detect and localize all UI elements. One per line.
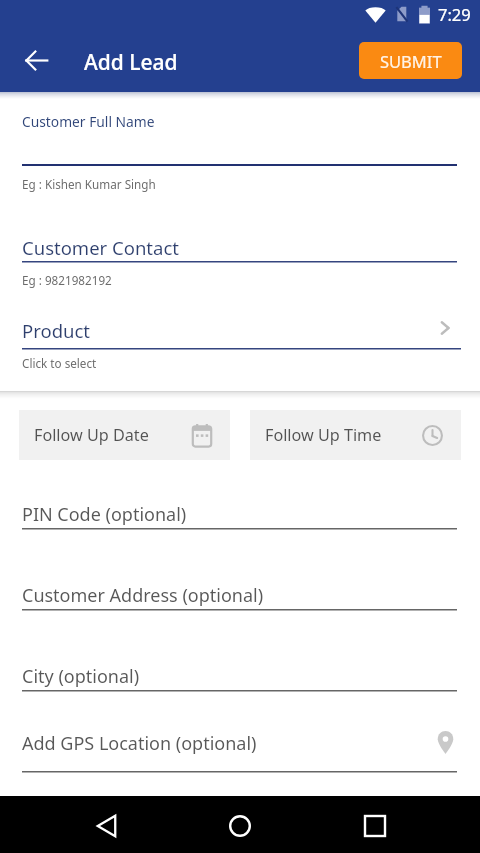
staticText: Add Lead <box>84 48 178 77</box>
staticText: Customer Address (optional) <box>22 583 264 608</box>
button[interactable]: Home <box>215 801 265 851</box>
staticText: Follow Up Date <box>34 424 149 446</box>
button[interactable]: Follow Up Time <box>250 410 461 460</box>
staticText: 7:29 <box>438 3 471 25</box>
button[interactable]: Follow Up Date <box>19 410 230 460</box>
staticText: Eg : 9821982192 <box>22 272 112 288</box>
button[interactable]: Back <box>81 801 131 851</box>
button[interactable]: Product <box>0 306 480 350</box>
staticText: PIN Code (optional) <box>22 502 187 527</box>
staticText: Eg : Kishen Kumar Singh <box>22 176 156 192</box>
button[interactable]: City (optional) <box>0 654 480 694</box>
button[interactable]: PIN Code (optional) <box>0 492 480 532</box>
staticText: Customer Contact <box>22 235 179 260</box>
staticText: Click to select <box>22 355 97 371</box>
button[interactable]: Recents <box>350 801 400 851</box>
button[interactable]: SUBMIT <box>359 42 462 79</box>
staticText: Add GPS Location (optional) <box>22 731 257 756</box>
staticText: Follow Up Time <box>265 424 382 446</box>
button[interactable]: Add GPS Location (optional) <box>0 735 480 775</box>
staticText: City (optional) <box>22 664 140 689</box>
staticText: Customer Full Name <box>22 112 155 131</box>
button[interactable]: Customer Address (optional) <box>0 573 480 613</box>
staticText: SUBMIT <box>380 50 442 72</box>
button[interactable]: Back <box>14 38 58 82</box>
staticText: Product <box>22 318 91 343</box>
